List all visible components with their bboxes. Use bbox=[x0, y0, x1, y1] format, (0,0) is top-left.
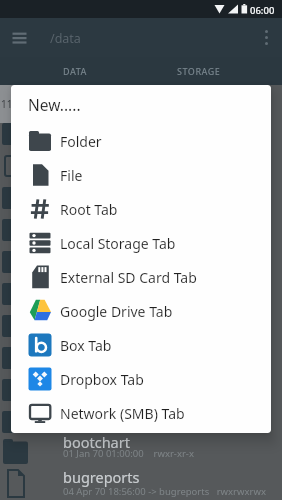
staticText: Network (SMB) Tab bbox=[60, 404, 185, 423]
staticText: Root Tab bbox=[60, 200, 118, 219]
staticText: 11 bbox=[1, 97, 13, 111]
staticText: bootchart bbox=[63, 432, 130, 452]
staticText: 01 Jan 70 01:00:00 rwxr-xr-x bbox=[63, 447, 194, 460]
button[interactable]: Box Tab bbox=[11, 328, 271, 362]
button[interactable]: External SD Card Tab bbox=[11, 260, 271, 294]
staticText: Google Drive Tab bbox=[60, 302, 173, 321]
button[interactable]: Network (SMB) Tab bbox=[11, 396, 271, 430]
button[interactable]: Folder bbox=[11, 124, 271, 158]
staticText: /data bbox=[50, 30, 81, 47]
button[interactable]: STORAGE bbox=[128, 57, 269, 85]
button[interactable]: Local Storage Tab bbox=[11, 226, 271, 260]
button[interactable]: Root Tab bbox=[11, 192, 271, 226]
staticText: 06:00 bbox=[250, 4, 275, 17]
staticText: STORAGE bbox=[177, 65, 221, 77]
button[interactable]: File bbox=[11, 158, 271, 192]
staticText: File bbox=[60, 166, 83, 185]
button[interactable]: Google Drive Tab bbox=[11, 294, 271, 328]
staticText: New..... bbox=[28, 94, 81, 115]
staticText: Folder bbox=[60, 132, 102, 151]
staticText: bugreports bbox=[63, 467, 140, 487]
button[interactable] bbox=[256, 26, 278, 52]
button[interactable] bbox=[6, 31, 32, 53]
staticText: DATA bbox=[63, 65, 87, 77]
staticText: External SD Card Tab bbox=[60, 268, 197, 287]
staticText: 04 Apr 70 18:56:00 -> bugreports rwxrwxr… bbox=[63, 485, 266, 498]
staticText: Box Tab bbox=[60, 336, 112, 355]
button[interactable]: Dropbox Tab bbox=[11, 362, 271, 396]
staticText: Dropbox Tab bbox=[60, 370, 144, 389]
staticText: Local Storage Tab bbox=[60, 234, 176, 253]
button[interactable]: DATA bbox=[9, 57, 141, 85]
